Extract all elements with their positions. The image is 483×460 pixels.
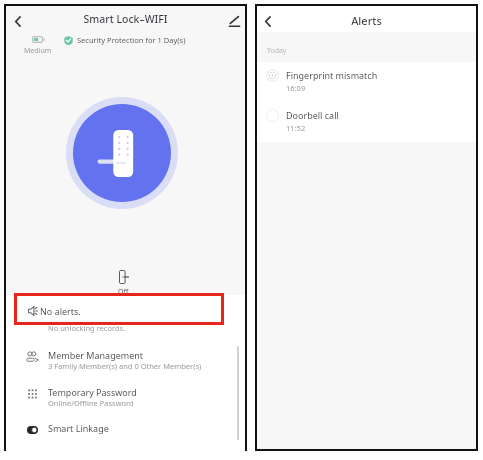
- button[interactable]: Member Management: [6, 341, 245, 381]
- button[interactable]: Back: [7, 10, 29, 32]
- staticText: Smart Lock–WIFI: [6, 12, 245, 26]
- staticText: 11:52: [286, 123, 306, 133]
- staticText: Doorbell call: [286, 109, 339, 121]
- staticText: Online/Offline Password: [48, 398, 134, 408]
- staticText: Off: [118, 287, 129, 297]
- staticText: 3 Family Member(s) and 0 Other Member(s): [48, 361, 202, 371]
- staticText: Temporary Password: [48, 386, 137, 398]
- button[interactable]: Temporary Password: [6, 378, 245, 418]
- staticText: Smart Linkage: [48, 422, 109, 434]
- staticText: No unlocking records.: [48, 323, 126, 333]
- staticText: Member Management: [48, 349, 144, 361]
- button[interactable]: Fingerprint mismatch: [257, 61, 476, 99]
- staticText: No alerts.: [48, 306, 89, 318]
- staticText: Alerts: [257, 13, 476, 28]
- button[interactable]: Back: [257, 10, 279, 32]
- button[interactable]: Lock: [73, 104, 171, 202]
- button[interactable]: No alerts.: [6, 298, 245, 338]
- button[interactable]: Doorbell call: [257, 101, 476, 139]
- staticText: Security Protection for 1 Day(s): [77, 35, 186, 45]
- staticText: 16:09: [286, 83, 306, 93]
- staticText: Today: [267, 46, 287, 56]
- staticText: Fingerprint mismatch: [286, 69, 378, 81]
- button[interactable]: Edit: [223, 10, 245, 32]
- staticText: Medium: [24, 46, 52, 56]
- staticText: No alerts.: [40, 305, 81, 317]
- button[interactable]: Smart Linkage: [6, 414, 245, 444]
